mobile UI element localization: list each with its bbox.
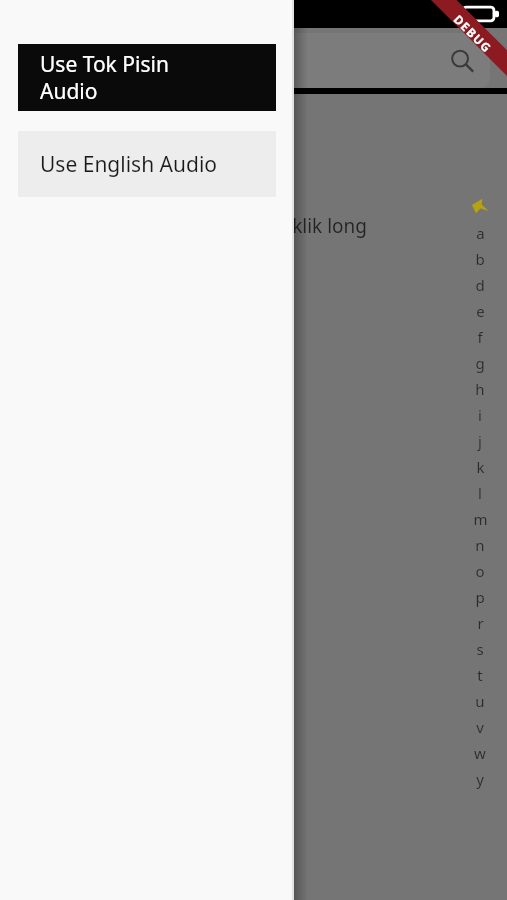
staticText: i xyxy=(478,405,482,425)
staticText: o xyxy=(475,561,485,581)
staticText: l xyxy=(478,483,482,503)
staticText: t xyxy=(477,665,483,685)
staticText: Use Tok Pisin Audio xyxy=(40,50,169,105)
staticText: Use English Audio xyxy=(40,150,218,179)
button[interactable]: Use English Audio xyxy=(18,131,276,197)
staticText: y xyxy=(476,769,484,789)
other: Scroll to top xyxy=(470,196,490,216)
other: Search xyxy=(450,49,474,73)
staticText: g xyxy=(475,353,485,373)
staticText: blut klik long xyxy=(252,213,367,239)
staticText: k xyxy=(476,457,485,477)
staticText: f xyxy=(477,327,483,347)
staticText: a xyxy=(476,223,485,243)
button[interactable]: Use Tok Pisin Audio xyxy=(18,44,276,111)
staticText: r xyxy=(477,613,484,633)
staticText: v xyxy=(476,717,484,737)
button[interactable]: Alphabet index xyxy=(467,196,493,792)
staticText: m xyxy=(473,509,488,529)
staticText: p xyxy=(475,587,485,607)
staticText: s xyxy=(476,639,484,659)
staticText: j xyxy=(478,431,482,451)
staticText: d xyxy=(475,275,485,295)
staticText: h xyxy=(475,379,485,399)
other: Battery xyxy=(463,5,499,23)
staticText: w xyxy=(474,743,486,763)
button[interactable]: blut klik long xyxy=(0,200,507,252)
button[interactable]: Search xyxy=(0,33,490,88)
staticText: b xyxy=(475,249,485,269)
staticText: n xyxy=(475,535,485,555)
staticText: e xyxy=(476,301,485,321)
staticText: u xyxy=(475,691,485,711)
